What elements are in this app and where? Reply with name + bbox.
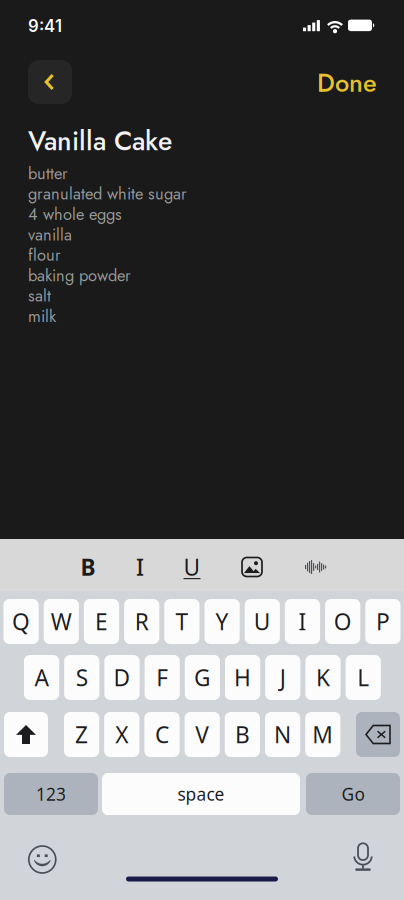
staticText: space: [177, 782, 224, 805]
staticText: I: [136, 552, 144, 582]
button[interactable]: H: [225, 655, 260, 700]
staticText: I: [298, 606, 306, 636]
staticText: V: [195, 719, 209, 749]
staticText: X: [115, 719, 128, 749]
button[interactable]: I: [285, 599, 320, 644]
button[interactable]: Go: [306, 773, 400, 815]
button[interactable]: A: [24, 655, 59, 700]
button[interactable]: J: [265, 655, 300, 700]
button[interactable]: Z: [64, 712, 99, 757]
button[interactable]: M: [305, 712, 340, 757]
button[interactable]: V: [185, 712, 220, 757]
button[interactable]: E: [84, 599, 119, 644]
staticText: N: [274, 719, 291, 749]
button[interactable]: Italic: [120, 548, 160, 586]
button[interactable]: U: [245, 599, 280, 644]
staticText: T: [175, 606, 188, 636]
staticText: D: [113, 662, 130, 692]
button[interactable]: C: [144, 712, 180, 757]
staticText: salt: [28, 284, 51, 308]
staticText: P: [376, 606, 390, 636]
button[interactable]: 123: [4, 773, 98, 815]
button[interactable]: Record audio: [296, 548, 336, 586]
button[interactable]: Dictate: [353, 843, 373, 871]
staticText: S: [76, 662, 88, 692]
button[interactable]: L: [346, 655, 381, 700]
button[interactable]: space: [102, 773, 300, 815]
staticText: M: [312, 719, 333, 749]
staticText: G: [194, 662, 211, 692]
staticText: R: [135, 606, 149, 636]
button[interactable]: Bold: [68, 548, 108, 586]
staticText: vanilla: [28, 223, 72, 247]
staticText: 9:41: [28, 16, 62, 36]
staticText: 4 whole eggs: [28, 202, 122, 226]
staticText: Q: [12, 606, 30, 636]
staticText: baking powder: [28, 264, 131, 287]
staticText: flour: [28, 243, 61, 267]
button[interactable]: N: [265, 712, 300, 757]
staticText: Go: [341, 782, 364, 805]
staticText: O: [334, 606, 352, 636]
button[interactable]: Shift: [4, 712, 48, 757]
button[interactable]: X: [104, 712, 139, 757]
button[interactable]: G: [185, 655, 220, 700]
staticText: granulated white sugar: [28, 182, 187, 206]
button[interactable]: Emoji: [29, 846, 56, 873]
staticText: C: [155, 719, 169, 749]
staticText: F: [156, 662, 168, 692]
button[interactable]: Done: [309, 65, 385, 101]
button[interactable]: F: [145, 655, 180, 700]
staticText: Z: [75, 719, 88, 749]
staticText: Done: [317, 65, 377, 101]
button[interactable]: W: [44, 599, 79, 644]
button[interactable]: Y: [204, 599, 240, 644]
button[interactable]: S: [64, 655, 99, 700]
button[interactable]: B: [225, 712, 260, 757]
button[interactable]: R: [124, 599, 159, 644]
staticText: W: [51, 606, 72, 636]
button[interactable]: P: [365, 599, 400, 644]
button[interactable]: Insert photo: [232, 548, 272, 586]
staticText: J: [280, 662, 286, 692]
button[interactable]: O: [325, 599, 360, 644]
staticText: B: [235, 719, 250, 749]
staticText: E: [95, 606, 108, 636]
staticText: A: [35, 662, 49, 692]
button[interactable]: T: [164, 599, 199, 644]
button[interactable]: D: [104, 655, 140, 700]
staticText: B: [80, 552, 95, 582]
staticText: K: [316, 662, 330, 692]
button[interactable]: Q: [3, 599, 39, 644]
staticText: U: [254, 606, 271, 636]
button[interactable]: K: [305, 655, 341, 700]
staticText: L: [357, 662, 369, 692]
staticText: butter: [28, 162, 68, 185]
button[interactable]: Back: [28, 60, 72, 104]
staticText: milk: [28, 304, 56, 328]
staticText: Y: [216, 606, 229, 636]
button[interactable]: Underline: [172, 548, 212, 586]
staticText: 123: [36, 782, 66, 805]
button[interactable]: Delete: [356, 712, 400, 757]
staticText: U: [183, 552, 200, 582]
staticText: Vanilla Cake: [28, 122, 172, 160]
staticText: H: [234, 662, 251, 692]
